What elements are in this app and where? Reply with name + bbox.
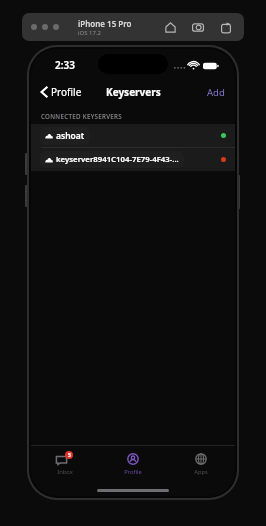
- button[interactable]: Home: [161, 18, 179, 36]
- staticText: iPhone 15 Pro: [78, 18, 132, 29]
- staticText: Keyservers: [106, 85, 161, 99]
- button[interactable]: Rotate: [217, 18, 235, 36]
- staticText: Profile: [124, 468, 142, 476]
- button[interactable]: keyserver8941C104-7E79-4F43-...: [31, 148, 235, 171]
- staticText: ashoat: [56, 130, 85, 142]
- button[interactable]: Profile: [99, 446, 167, 484]
- button[interactable]: Profile: [38, 83, 85, 101]
- button[interactable]: [42, 24, 48, 30]
- button[interactable]: Screenshot: [189, 18, 207, 36]
- button[interactable]: [53, 24, 59, 30]
- staticText: 5: [68, 452, 71, 459]
- staticText: Inbox: [57, 468, 73, 476]
- staticText: iOS 17.2: [78, 29, 101, 37]
- staticText: keyserver8941C104-7E79-4F43-...: [56, 154, 179, 165]
- staticText: CONNECTED KEYSERVERS: [41, 112, 122, 120]
- button[interactable]: Apps: [167, 446, 235, 484]
- staticText: Apps: [194, 468, 208, 476]
- button[interactable]: [31, 24, 37, 30]
- staticText: 2:33: [55, 58, 75, 72]
- staticText: Profile: [51, 85, 82, 99]
- button[interactable]: 5: [31, 446, 99, 484]
- button[interactable]: Add: [197, 83, 235, 102]
- button[interactable]: ashoat: [31, 124, 235, 147]
